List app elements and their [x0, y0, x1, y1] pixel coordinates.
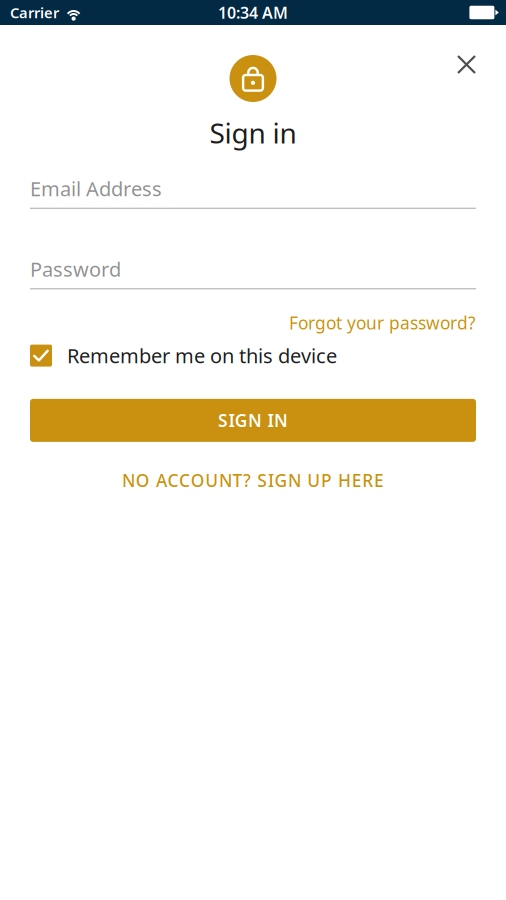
button[interactable]: Password	[30, 254, 476, 289]
button[interactable]: Email Address	[30, 173, 476, 209]
staticText: Remember me on this device	[67, 342, 337, 369]
staticText: Forgot your password?	[289, 311, 476, 334]
button[interactable]: Close	[443, 41, 490, 88]
button[interactable]: Forgot your password?	[289, 311, 476, 334]
button[interactable]: Remember me on this device	[30, 342, 476, 369]
staticText: NO ACCOUNT? SIGN UP HERE	[122, 469, 384, 492]
staticText: Email Address	[30, 175, 162, 202]
staticText: SIGN IN	[218, 409, 288, 432]
button[interactable]: NO ACCOUNT? SIGN UP HERE	[30, 469, 476, 492]
staticText: Sign in	[209, 114, 296, 151]
button[interactable]: SIGN IN	[30, 399, 476, 442]
staticText: Password	[30, 256, 121, 282]
staticText: 10:34 AM	[218, 2, 288, 23]
staticText: Carrier	[10, 3, 59, 22]
